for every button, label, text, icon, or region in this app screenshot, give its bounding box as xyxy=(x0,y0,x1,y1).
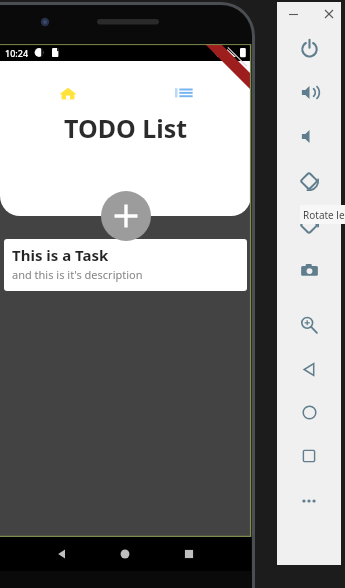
staticText: TODO List xyxy=(64,111,188,145)
staticText: This is a Task xyxy=(12,245,109,265)
button[interactable]: Rotate left xyxy=(295,167,323,195)
button[interactable]: Take screenshot xyxy=(295,256,323,284)
button[interactable]: Back xyxy=(295,355,323,383)
button[interactable]: Recent apps xyxy=(295,442,323,470)
button[interactable]: Task list xyxy=(175,86,193,100)
button[interactable]: Back xyxy=(30,537,93,571)
button[interactable]: Add task xyxy=(101,191,151,241)
button[interactable]: Home xyxy=(295,398,323,426)
button[interactable]: Power xyxy=(295,34,323,62)
staticText: Rotate le xyxy=(303,208,345,222)
button[interactable]: This is a Task xyxy=(4,239,247,291)
staticText: 10:24 xyxy=(5,47,29,59)
button[interactable]: Rotate right xyxy=(295,211,323,239)
button[interactable]: Volume up xyxy=(295,78,323,106)
staticText: and this is it's description xyxy=(12,267,143,282)
button[interactable]: Close xyxy=(321,6,337,22)
button[interactable]: Home xyxy=(58,83,78,103)
button[interactable]: Zoom xyxy=(295,311,323,339)
button[interactable]: Recent apps xyxy=(157,537,221,571)
button[interactable]: Home xyxy=(93,537,157,571)
button[interactable]: More xyxy=(295,487,323,515)
button[interactable]: Volume down xyxy=(295,122,323,150)
button[interactable]: Minimize xyxy=(285,6,301,22)
